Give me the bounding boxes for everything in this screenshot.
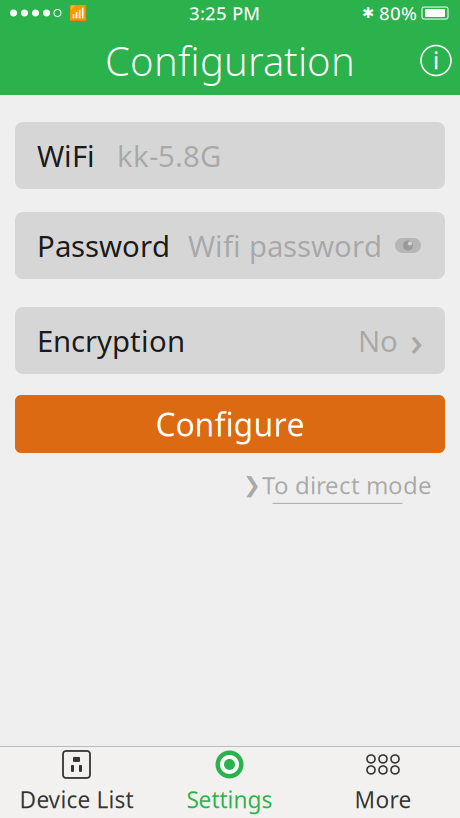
staticText: Settings — [186, 784, 272, 814]
staticText: 📶 — [69, 5, 87, 21]
staticText: WiFi — [37, 136, 95, 175]
button[interactable]: Device List — [0, 747, 153, 817]
staticText: ❯ — [243, 473, 261, 497]
staticText: No — [358, 321, 398, 360]
staticText: Device List — [19, 784, 133, 814]
staticText: kk-5.8G — [117, 136, 221, 175]
button[interactable]: WiFi — [15, 122, 445, 189]
staticText: Wifi password — [188, 226, 382, 265]
button[interactable]: Configure — [15, 395, 445, 453]
staticText: Password — [37, 226, 170, 265]
button[interactable]: More — [306, 747, 460, 817]
staticText: 80% — [379, 1, 417, 25]
staticText: › — [410, 314, 423, 367]
staticText: ✱ — [362, 5, 374, 21]
button[interactable]: Encryption — [15, 307, 445, 374]
button[interactable]: ❯ — [237, 465, 438, 508]
button[interactable]: Password — [15, 212, 445, 279]
staticText: i — [433, 45, 439, 75]
staticText: To direct mode — [262, 469, 432, 501]
button[interactable]: Information — [412, 36, 460, 84]
staticText: More — [354, 784, 411, 814]
button[interactable]: Settings — [153, 747, 306, 817]
staticText: Encryption — [37, 321, 185, 360]
staticText: Configuration — [105, 34, 355, 87]
staticText: 3:25 PM — [189, 1, 260, 25]
staticText: Configure — [155, 403, 304, 445]
